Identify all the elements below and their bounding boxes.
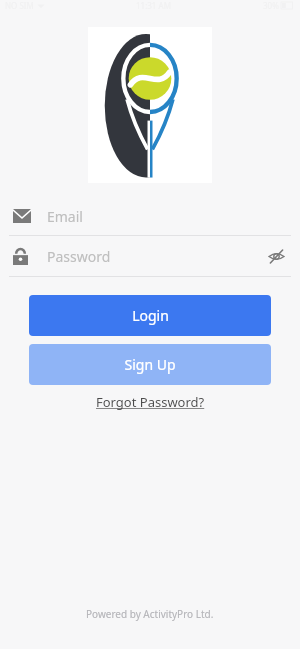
staticText: Forgot Password?	[96, 393, 205, 411]
staticText: Sign Up	[124, 355, 176, 374]
button[interactable]: Sign Up	[29, 344, 271, 385]
other: Email	[13, 209, 31, 223]
staticText: Login	[132, 306, 169, 325]
button[interactable]: Login	[29, 295, 271, 336]
staticText: Email	[47, 207, 83, 226]
button[interactable]: Password	[0, 236, 300, 276]
button[interactable]: Forgot Password?	[90, 391, 211, 413]
staticText: Password	[47, 247, 111, 266]
button[interactable]: Toggle password visibility	[265, 245, 287, 267]
staticText: Powered by ActivityPro Ltd.	[86, 607, 214, 621]
button[interactable]: Email	[0, 197, 300, 235]
